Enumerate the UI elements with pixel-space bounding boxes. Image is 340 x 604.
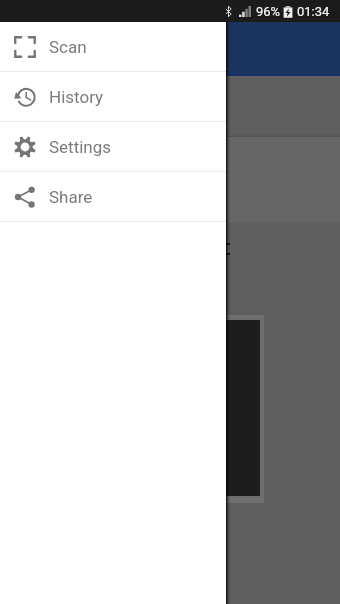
- button[interactable]: Share: [0, 172, 226, 221]
- staticText: History: [49, 87, 104, 107]
- button[interactable]: History: [0, 72, 226, 121]
- staticText: Share: [49, 187, 93, 207]
- staticText: Scan: [49, 37, 87, 57]
- staticText: 96%: [256, 4, 281, 19]
- staticText: 01:34: [297, 4, 330, 19]
- button[interactable]: Scan: [0, 22, 226, 71]
- staticText: Settings: [49, 137, 112, 157]
- button[interactable]: Settings: [0, 122, 226, 171]
